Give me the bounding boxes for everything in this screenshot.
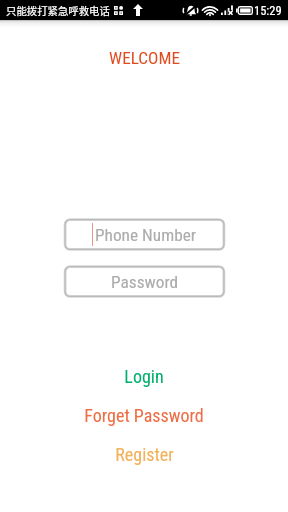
staticText: Register [115,444,174,465]
staticText: WELCOME [109,48,180,68]
staticText: Login [124,366,164,387]
button[interactable]: Register [105,444,184,465]
button[interactable]: Login [114,366,174,387]
button[interactable]: Password [65,266,224,297]
button[interactable]: Phone Number [65,219,224,250]
staticText: Forget Password [84,405,204,426]
button[interactable]: Forget Password [74,405,214,426]
staticText: 15:29 [254,3,282,18]
staticText: 只能拨打紧急呼救电话 [6,3,110,18]
staticText: Password [111,272,179,292]
staticText: Phone Number [95,225,197,245]
